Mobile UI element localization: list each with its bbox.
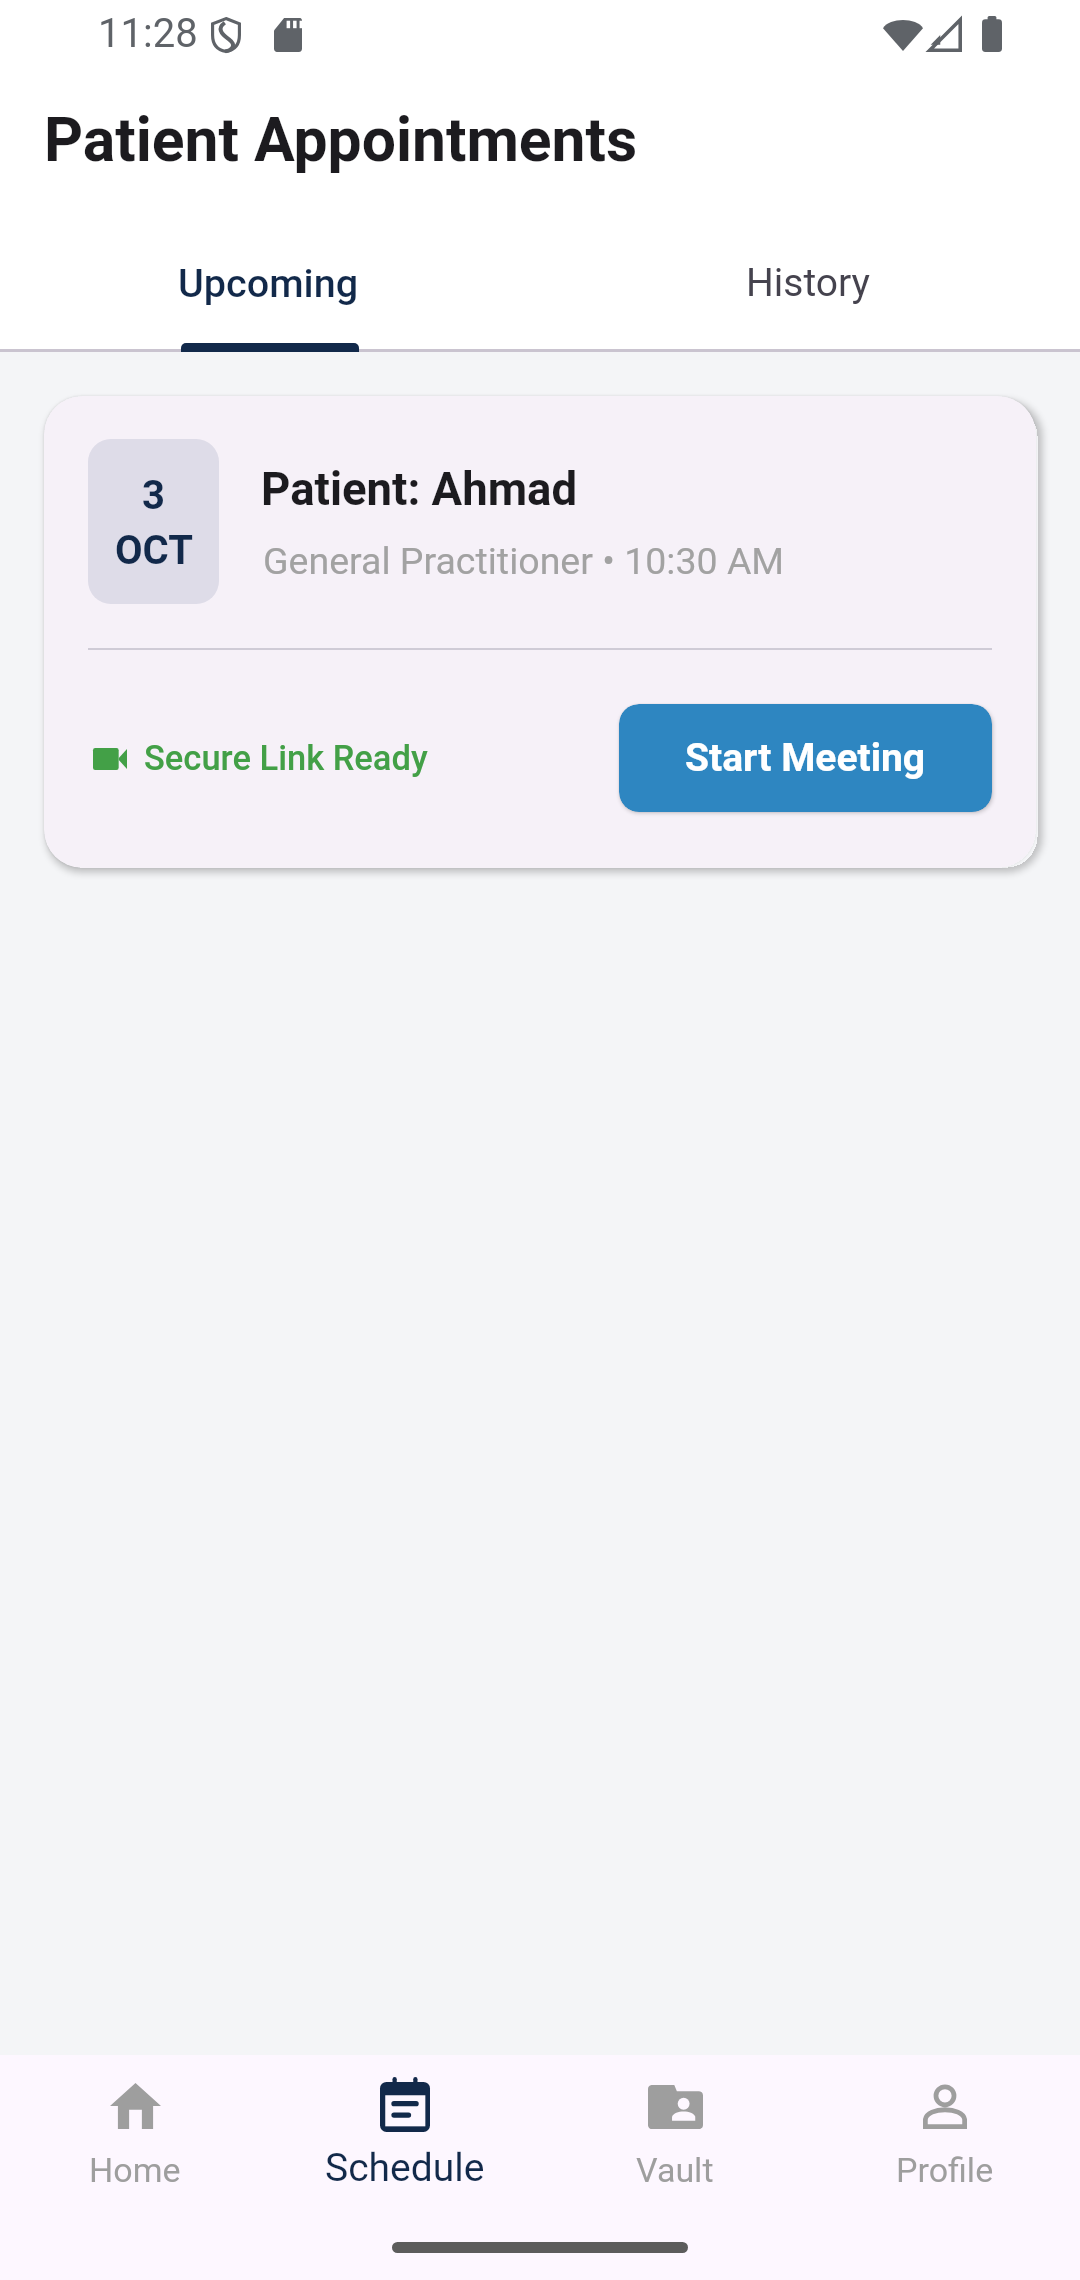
other: Home	[110, 2083, 161, 2129]
staticText: 11:28	[98, 10, 198, 57]
button[interactable]: Schedule	[270, 2055, 540, 2280]
staticText: History	[746, 260, 871, 306]
staticText: Patient Appointments	[44, 104, 638, 176]
button[interactable]: Start Meeting	[619, 704, 992, 812]
button[interactable]: Upcoming	[0, 232, 540, 352]
other: Profile	[923, 2085, 967, 2129]
button[interactable]: Home	[0, 2055, 270, 2280]
other: Video call	[93, 748, 127, 770]
staticText: 3	[142, 472, 165, 519]
other: Vault	[648, 2085, 703, 2129]
staticText: OCT	[115, 527, 193, 574]
staticText: Vault	[636, 2150, 714, 2190]
staticText: Home	[89, 2150, 181, 2190]
other: Schedule	[380, 2077, 430, 2132]
staticText: General Practitioner • 10:30 AM	[263, 539, 785, 583]
staticText: Upcoming	[178, 260, 359, 307]
staticText: Schedule	[325, 2145, 485, 2191]
staticText: Patient: Ahmad	[261, 462, 578, 516]
button[interactable]: 3	[44, 396, 1036, 868]
staticText: Secure Link Ready	[144, 738, 428, 779]
staticText: Profile	[896, 2150, 994, 2190]
button[interactable]: History	[540, 232, 1080, 352]
button[interactable]: Vault	[540, 2055, 810, 2280]
staticText: Start Meeting	[685, 735, 926, 781]
button[interactable]: Profile	[810, 2055, 1080, 2280]
